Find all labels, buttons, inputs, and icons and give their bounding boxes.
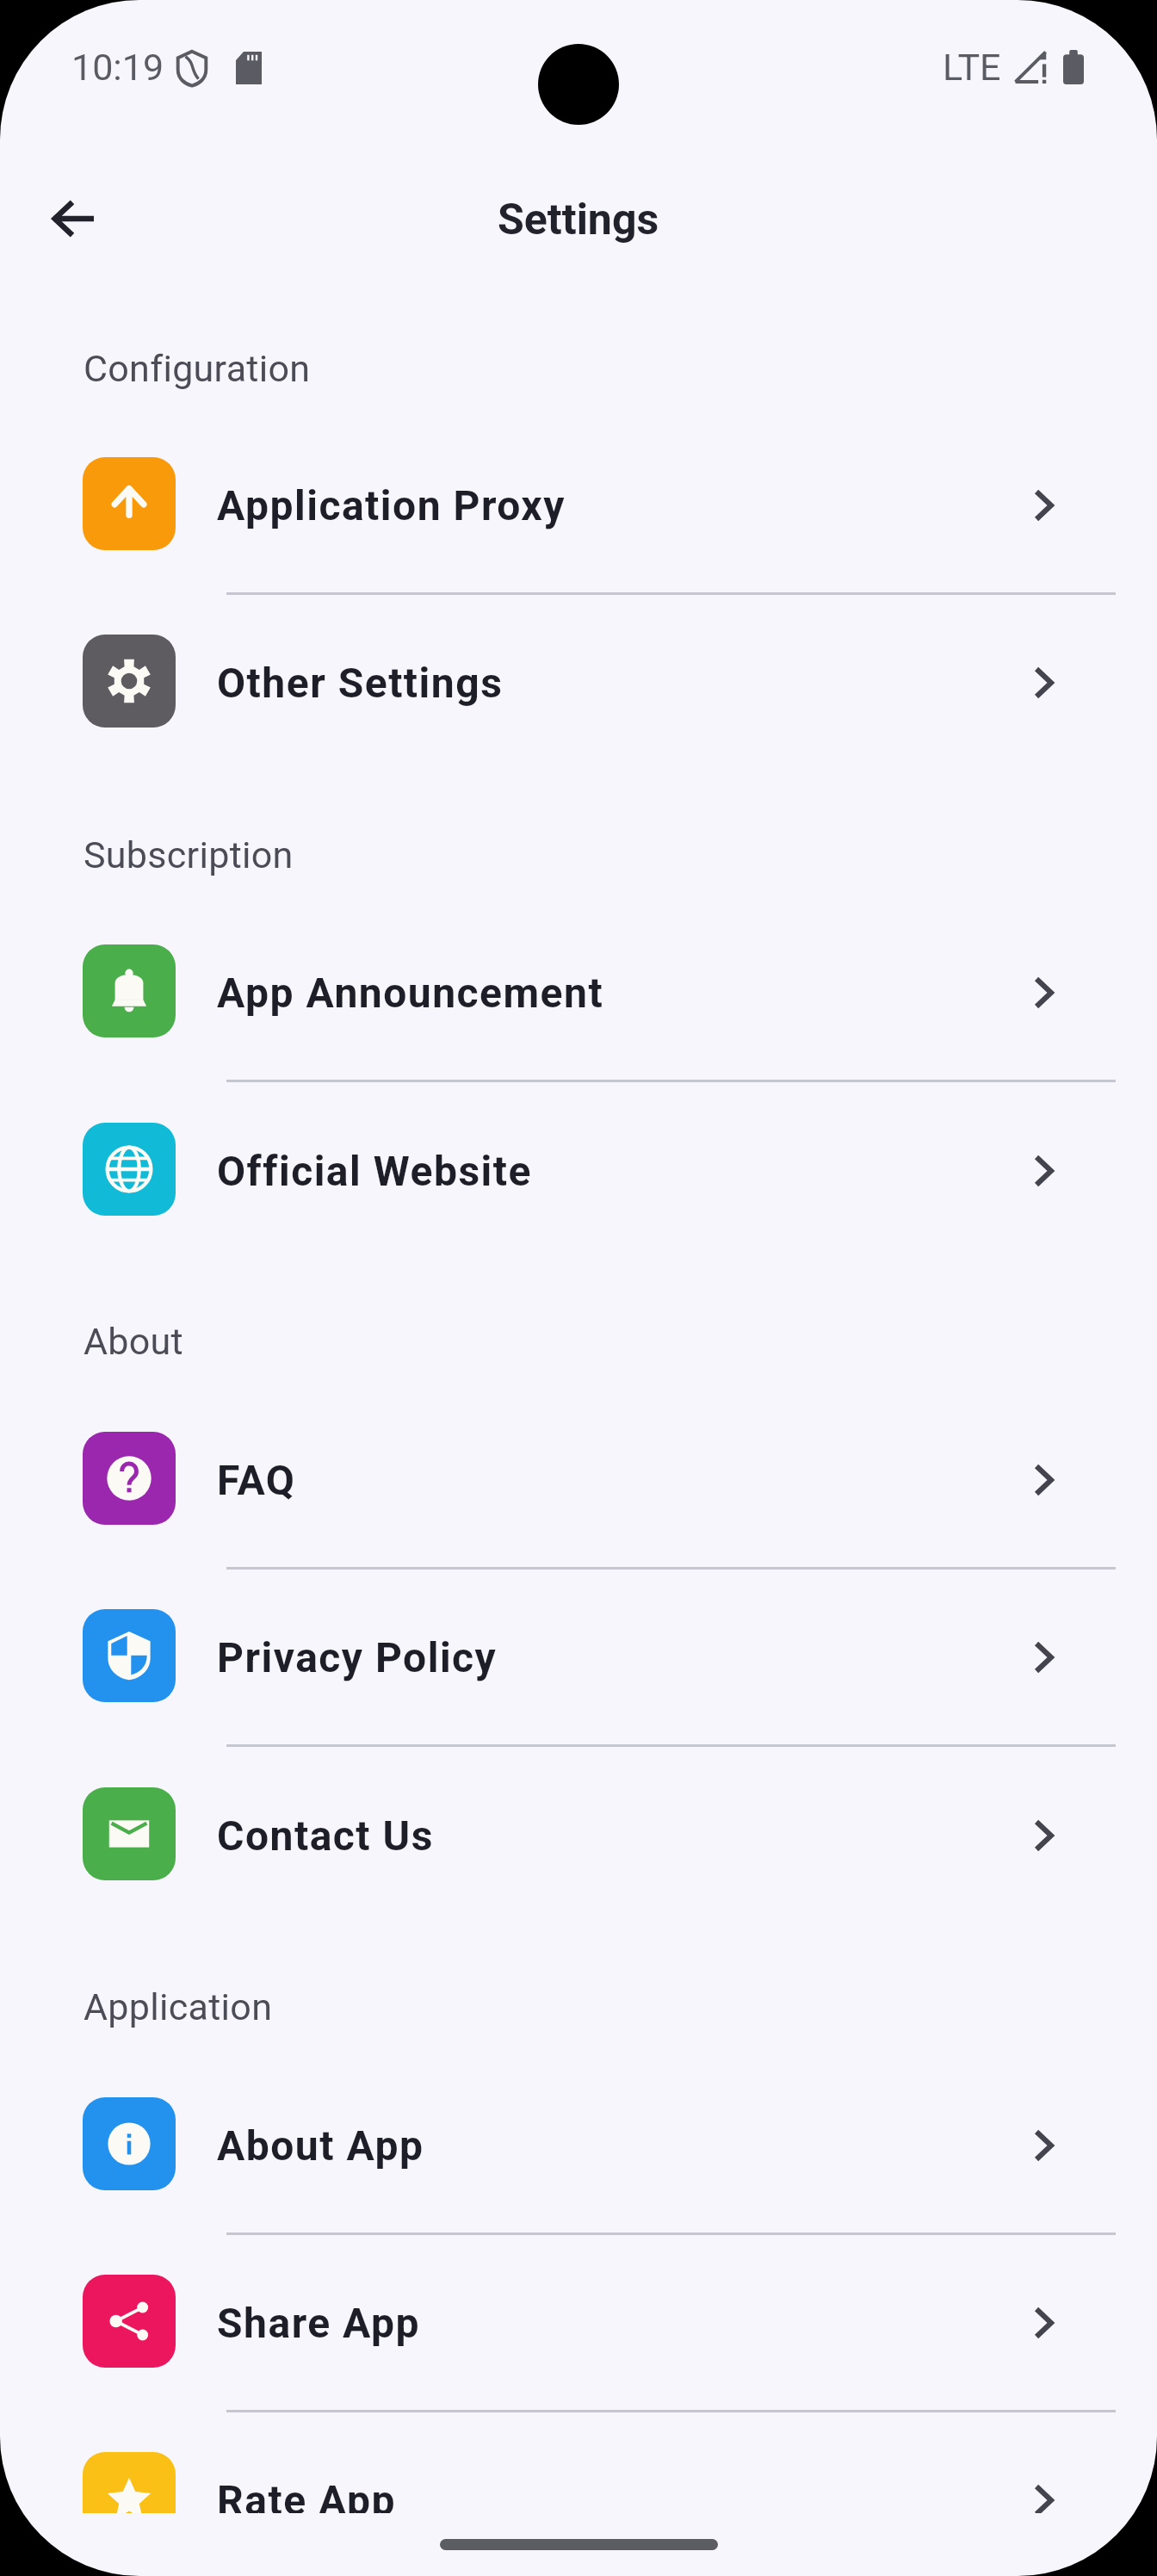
button[interactable]: Contact Us [0,1745,1157,1923]
staticText: Subscription [84,833,294,876]
staticText: Share App [217,2299,421,2347]
button[interactable]: FAQ [0,1390,1157,1567]
staticText: About App [217,2121,424,2170]
staticText: Application Proxy [217,481,566,529]
staticText: Rate App [217,2476,397,2513]
staticText: Settings [498,195,659,245]
staticText: Privacy Policy [217,1633,498,1681]
button[interactable]: Back [31,177,114,260]
button[interactable]: Official Website [0,1081,1157,1258]
button[interactable]: Rate App [0,2410,1157,2513]
button[interactable]: Other Settings [0,592,1157,770]
staticText: Contact Us [217,1811,434,1860]
button[interactable]: Share App [0,2232,1157,2410]
button[interactable]: Privacy Policy [0,1567,1157,1744]
staticText: LTE [943,46,1001,89]
staticText: Other Settings [217,659,504,707]
staticText: About [84,1320,183,1363]
button[interactable]: About App [0,2055,1157,2232]
button[interactable]: App Announcement [0,902,1157,1080]
button[interactable]: Application Proxy [0,415,1157,592]
staticText: Application [84,1985,273,2028]
staticText: 10:19 [71,46,164,89]
staticText: App Announcement [217,969,604,1017]
staticText: FAQ [217,1456,296,1504]
staticText: Official Website [217,1147,532,1195]
staticText: Configuration [84,347,311,390]
